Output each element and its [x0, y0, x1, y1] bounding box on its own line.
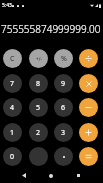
staticText: 8	[36, 79, 41, 89]
staticText: 3	[61, 128, 66, 138]
button[interactable]: %	[54, 49, 73, 68]
button[interactable]: equals	[79, 147, 98, 166]
button[interactable]: Home	[49, 174, 53, 178]
button[interactable]: plus	[79, 123, 98, 142]
staticText: +/-	[36, 56, 42, 62]
button[interactable]: 8	[29, 74, 48, 93]
button[interactable]: 5	[29, 98, 48, 117]
staticText: 1	[10, 128, 15, 138]
staticText: %	[61, 54, 67, 64]
staticText: 5	[36, 103, 41, 113]
button[interactable]: 4	[3, 98, 22, 117]
button[interactable]: 0	[3, 147, 22, 166]
staticText: 9	[61, 79, 66, 89]
button[interactable]: C	[3, 49, 22, 68]
button[interactable]: 3	[54, 123, 73, 142]
button[interactable]: decimal point	[54, 147, 73, 166]
button[interactable]: 7	[3, 74, 22, 93]
button[interactable]: 9	[54, 74, 73, 93]
staticText: 4	[10, 103, 15, 113]
staticText: C	[10, 54, 15, 64]
button[interactable]: Back	[22, 173, 26, 178]
staticText: 2	[36, 128, 41, 138]
button[interactable]: 6	[54, 98, 73, 117]
button[interactable]: multiply	[79, 74, 98, 93]
staticText: 755555874999999.00	[1, 22, 101, 36]
button[interactable]: divide	[79, 49, 98, 68]
staticText: 7	[10, 79, 15, 89]
staticText: 6	[61, 103, 66, 113]
staticText: 0	[10, 152, 15, 162]
staticText: 5:43	[2, 2, 12, 9]
button[interactable]: 1	[3, 123, 22, 142]
button[interactable]: 2	[29, 123, 48, 142]
button[interactable]: +/-	[29, 49, 48, 68]
button[interactable]: backspace	[29, 147, 48, 166]
button[interactable]: minus	[79, 98, 98, 117]
